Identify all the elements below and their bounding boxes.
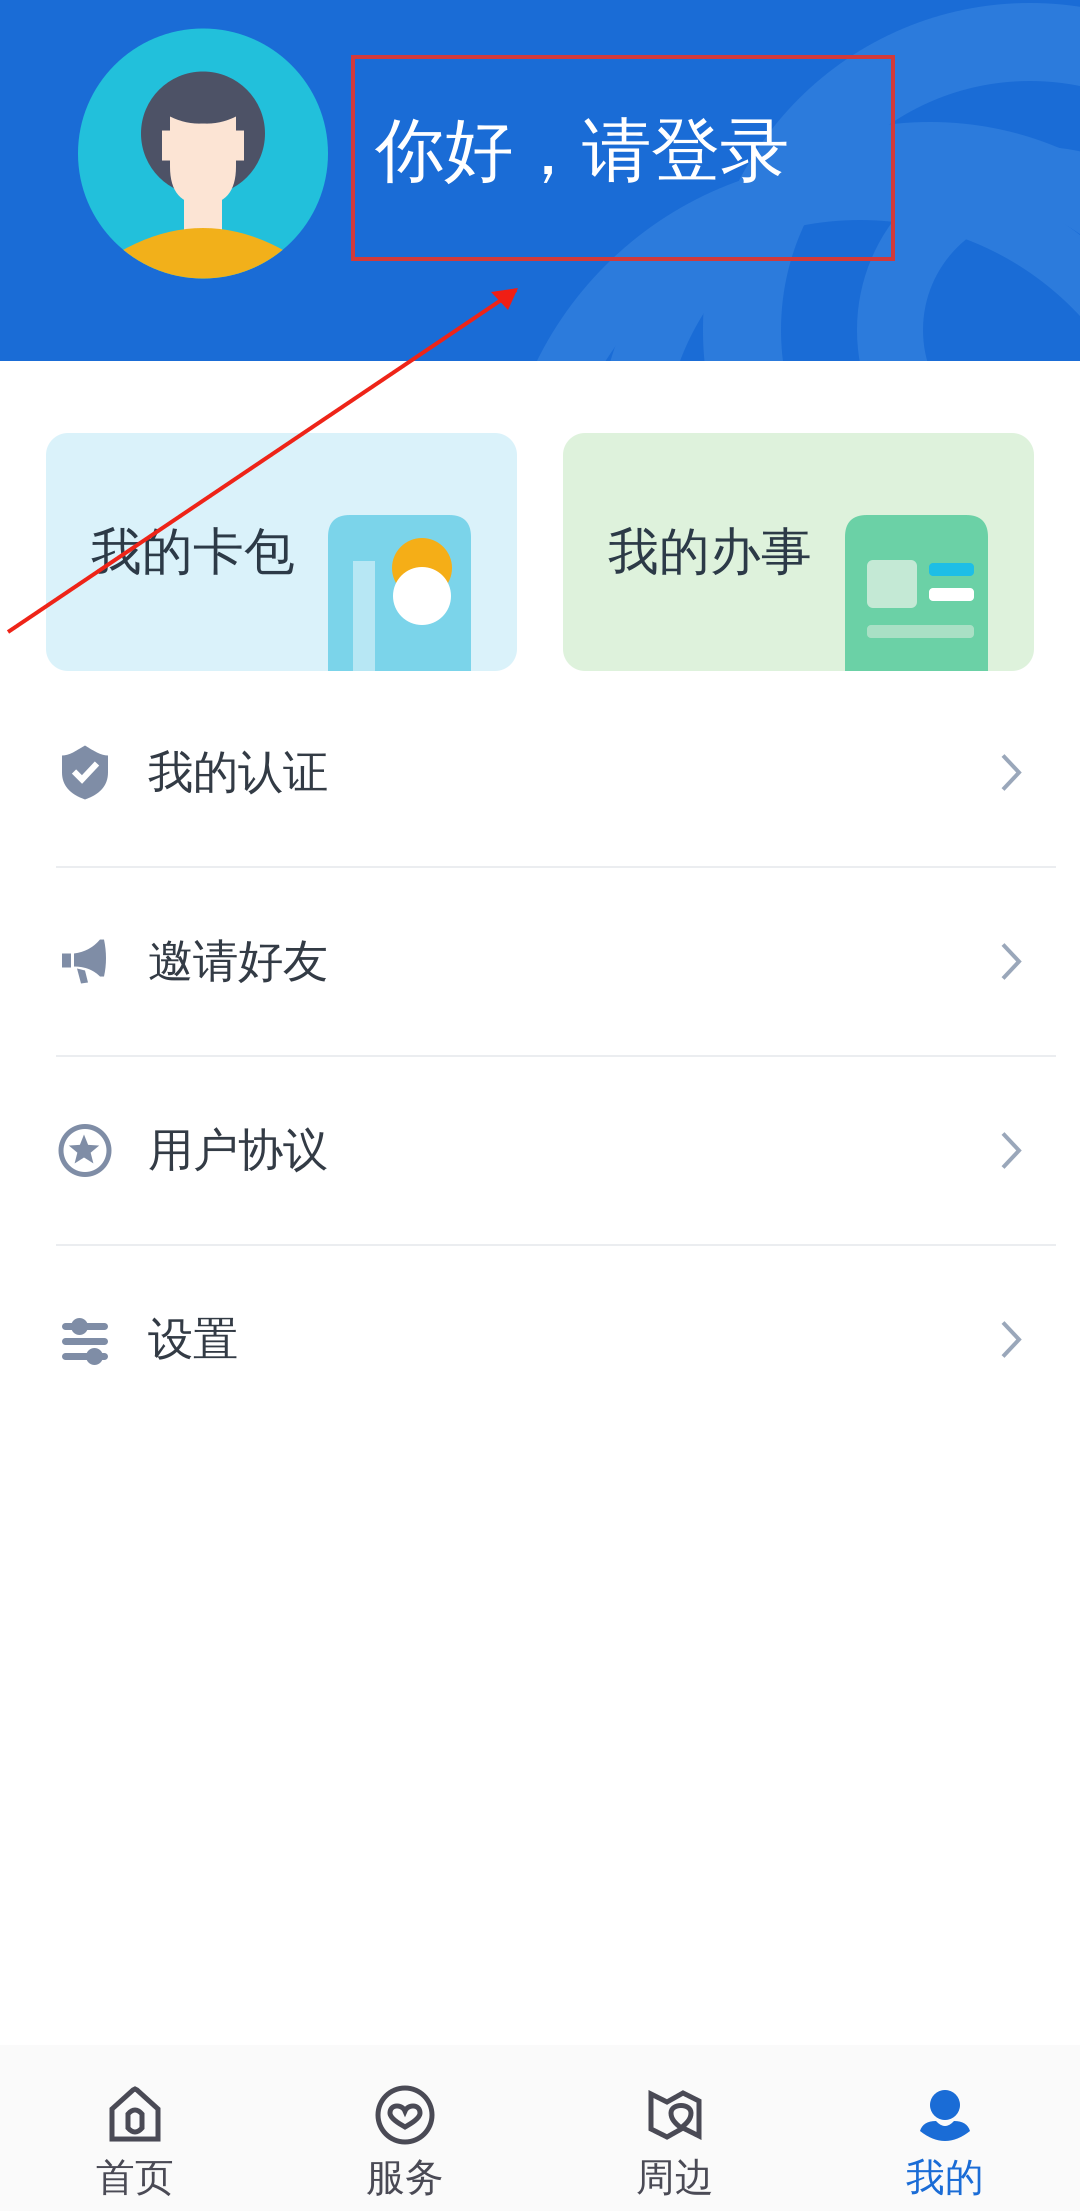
staticText: 我的卡包 <box>91 521 295 583</box>
button[interactable]: 周边 <box>540 2045 810 2211</box>
staticText: 周边 <box>636 2154 714 2201</box>
button[interactable]: 设置 <box>0 1246 1080 1433</box>
button[interactable]: 邀请好友 <box>0 868 1080 1055</box>
staticText: 我的 <box>906 2154 984 2201</box>
button[interactable]: 首页 <box>0 2045 270 2211</box>
button[interactable]: 我的办事 <box>563 433 1034 671</box>
staticText: 我的办事 <box>608 521 812 583</box>
button[interactable]: 服务 <box>270 2045 540 2211</box>
staticText: 你好，请登录 <box>375 108 789 194</box>
button[interactable]: 用户协议 <box>0 1057 1080 1244</box>
button[interactable]: 我的卡包 <box>46 433 517 671</box>
button[interactable]: 我的 <box>810 2045 1080 2211</box>
button[interactable]: 你好，请登录 <box>353 57 893 259</box>
staticText: 服务 <box>366 2154 444 2201</box>
staticText: 用户协议 <box>148 1123 328 1178</box>
staticText: 首页 <box>96 2154 174 2201</box>
staticText: 我的认证 <box>148 745 328 800</box>
staticText: 设置 <box>148 1312 238 1367</box>
staticText: 邀请好友 <box>148 934 328 989</box>
button[interactable]: 我的认证 <box>0 679 1080 866</box>
